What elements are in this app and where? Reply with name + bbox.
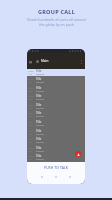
button[interactable]: 10:30 bbox=[27, 136, 85, 145]
staticText: subtitle bbox=[36, 73, 45, 76]
staticText: Main bbox=[41, 59, 49, 63]
staticText: 10:30 bbox=[28, 87, 34, 90]
staticText: AM bbox=[29, 115, 33, 118]
staticText: AM bbox=[29, 150, 33, 153]
staticText: Title bbox=[36, 154, 42, 158]
button[interactable]: More options bbox=[79, 59, 83, 63]
staticText: subtitle bbox=[36, 81, 45, 84]
staticText: subtitle bbox=[36, 124, 45, 127]
staticText: subtitle bbox=[36, 107, 45, 110]
staticText: AM bbox=[29, 90, 33, 93]
staticText: 10:30 bbox=[28, 104, 34, 107]
staticText: Title bbox=[36, 86, 42, 90]
staticText: Title bbox=[36, 103, 42, 107]
staticText: GROUP CALL bbox=[38, 8, 75, 15]
staticText: 10:30 bbox=[28, 147, 34, 150]
staticText: Title bbox=[36, 120, 42, 124]
button[interactable]: 10:30 bbox=[27, 153, 85, 162]
staticText: 10:30 bbox=[28, 138, 34, 141]
staticText: AM bbox=[29, 73, 33, 76]
staticText: AM bbox=[29, 107, 33, 110]
staticText: AM bbox=[29, 133, 33, 136]
staticText: AM bbox=[29, 141, 33, 144]
button[interactable]: Account bbox=[36, 60, 39, 63]
staticText: subtitle bbox=[36, 150, 45, 153]
staticText: AM bbox=[29, 81, 33, 84]
staticText: 10:30 bbox=[28, 130, 34, 133]
staticText: 10:30 bbox=[28, 78, 34, 81]
staticText: 10:30 bbox=[28, 95, 34, 98]
button[interactable]: 10:30 bbox=[27, 69, 85, 76]
staticText: subtitle bbox=[36, 90, 45, 93]
button[interactable]: 10:30 bbox=[27, 128, 85, 137]
button[interactable]: 10:30 bbox=[27, 76, 85, 85]
button[interactable]: PUSH TO TALK bbox=[27, 162, 85, 174]
staticText: subtitle bbox=[36, 133, 45, 136]
button[interactable]: 10:30 bbox=[27, 102, 85, 111]
staticText: subtitle bbox=[36, 115, 45, 118]
button[interactable]: 10:30 bbox=[27, 93, 85, 102]
staticText: Reach hundreds of users all around the g… bbox=[27, 17, 86, 27]
staticText: AM bbox=[29, 98, 33, 101]
button[interactable]: 10:30 bbox=[27, 110, 85, 119]
staticText: 10:30 bbox=[28, 155, 34, 158]
button[interactable]: 10:30 bbox=[27, 145, 85, 154]
staticText: subtitle bbox=[36, 158, 45, 161]
staticText: Title bbox=[36, 69, 42, 73]
staticText: AM bbox=[29, 124, 33, 127]
button[interactable]: 10:30 bbox=[27, 85, 85, 94]
staticText: 10:30 bbox=[28, 121, 34, 124]
button[interactable]: 10:30 bbox=[27, 119, 85, 128]
staticText: AM bbox=[29, 158, 33, 161]
staticText: subtitle bbox=[36, 98, 45, 101]
staticText: Title bbox=[36, 77, 42, 81]
staticText: Title bbox=[36, 137, 42, 141]
staticText: 10:30 bbox=[28, 112, 34, 115]
staticText: Title bbox=[36, 129, 42, 133]
button[interactable]: Push to talk bbox=[75, 151, 81, 157]
staticText: subtitle bbox=[36, 141, 45, 144]
staticText: PUSH TO TALK bbox=[44, 166, 69, 170]
staticText: 10:30 bbox=[28, 70, 34, 73]
staticText: Title bbox=[36, 111, 42, 115]
staticText: Title bbox=[36, 94, 42, 98]
button[interactable]: Menu bbox=[28, 59, 33, 64]
staticText: Title bbox=[36, 146, 42, 150]
